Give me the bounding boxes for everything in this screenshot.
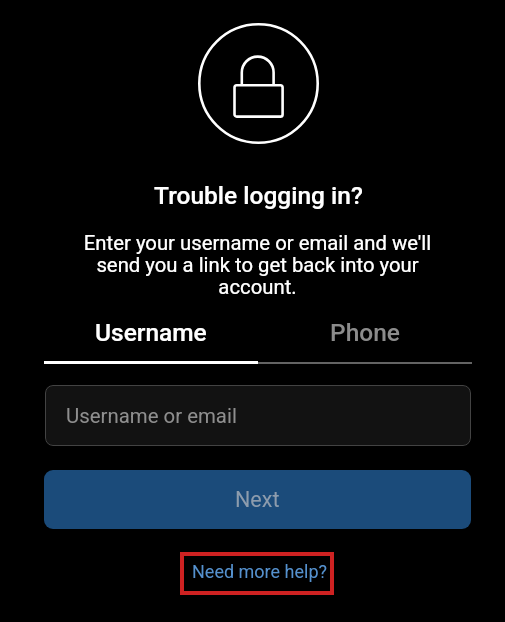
- staticText: Enter your username or email and we'll s…: [69, 231, 446, 299]
- button[interactable]: Need more help?: [180, 552, 334, 595]
- staticText: Username or email: [66, 404, 237, 428]
- button[interactable]: Username or email: [45, 385, 471, 446]
- button[interactable]: Next: [44, 470, 471, 529]
- staticText: Phone: [330, 318, 400, 347]
- staticText: Need more help?: [192, 561, 327, 582]
- staticText: Trouble logging in?: [6, 181, 505, 210]
- button[interactable]: Phone: [258, 318, 472, 364]
- button[interactable]: Username: [44, 318, 258, 364]
- other: Locked account: [198, 23, 319, 144]
- staticText: Next: [235, 487, 280, 512]
- staticText: Username: [95, 318, 207, 347]
